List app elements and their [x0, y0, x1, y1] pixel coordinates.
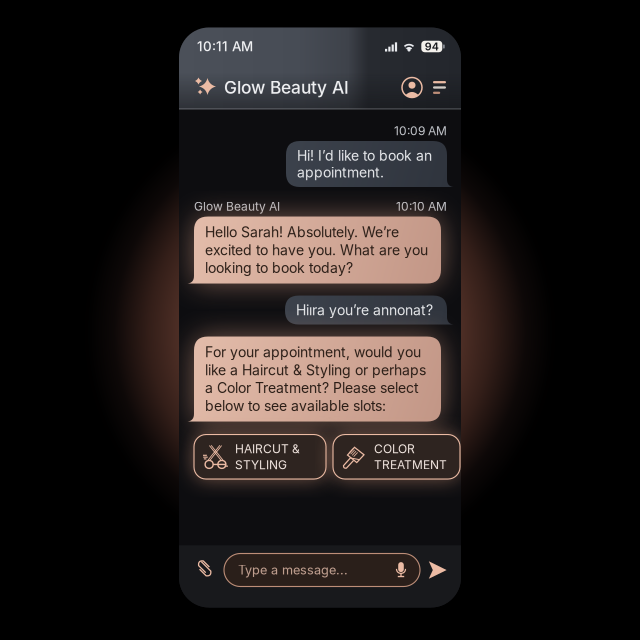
staticText: Glow Beauty AI	[224, 77, 349, 98]
staticText: 94	[425, 40, 439, 53]
staticText: like a Haircut & Styling or perhaps	[205, 362, 426, 378]
staticText: TREATMENT	[374, 457, 447, 472]
button[interactable]: COLOR	[333, 434, 460, 479]
staticText: appointment.	[297, 164, 384, 181]
staticText: Hiıra you’re annonat?	[296, 302, 433, 318]
staticText: Hi! I’d like to book an	[297, 147, 432, 164]
staticText: a Color Treatment? Please select	[205, 379, 419, 396]
staticText: Hello Sarah! Absolutely. We’re	[205, 224, 399, 240]
staticText: STYLING	[235, 457, 287, 472]
staticText: 10:09 AM	[394, 123, 447, 138]
staticText: excited to have you. What are you	[205, 242, 428, 258]
button[interactable]: Attach file	[194, 559, 216, 581]
button[interactable]: Profile	[402, 77, 422, 97]
staticText: 10:10 AM	[396, 199, 447, 213]
button[interactable]: HAIRCUT &	[194, 434, 326, 479]
button[interactable]: Send	[428, 561, 447, 579]
staticText: COLOR	[374, 441, 415, 456]
staticText: below to see available slots:	[205, 397, 386, 414]
staticText: Type a message...	[238, 562, 348, 578]
staticText: looking to book today?	[205, 259, 353, 276]
staticText: For your appointment, would you	[205, 344, 421, 361]
staticText: 10:11 AM	[197, 38, 253, 54]
button[interactable]: Menu	[422, 81, 446, 94]
staticText: Glow Beauty AI	[194, 199, 280, 213]
staticText: HAIRCUT &	[235, 441, 300, 456]
